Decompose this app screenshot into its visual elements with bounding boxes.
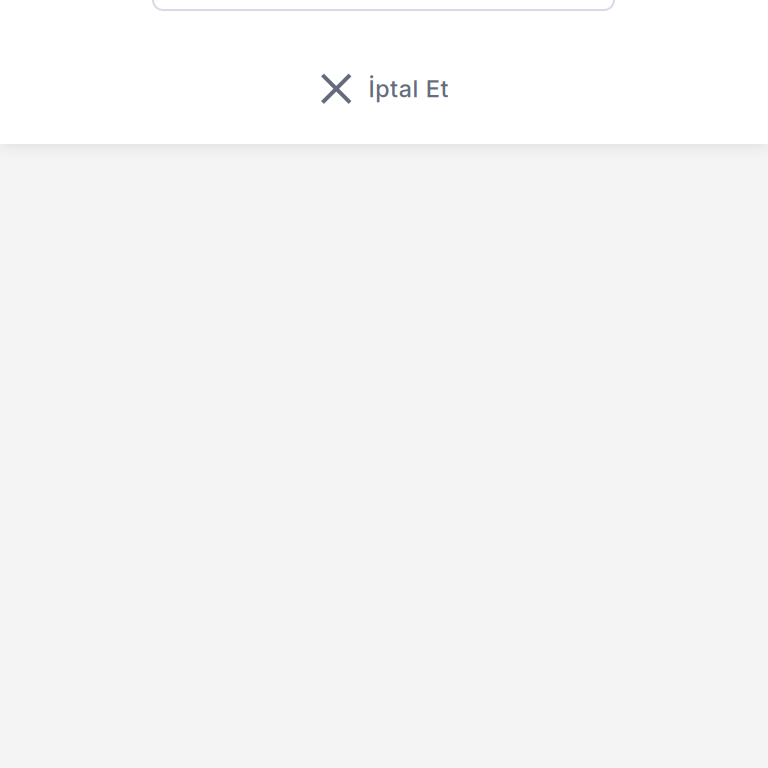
button[interactable]: İptal Et (308, 63, 470, 114)
staticText: İptal Et (368, 75, 448, 103)
